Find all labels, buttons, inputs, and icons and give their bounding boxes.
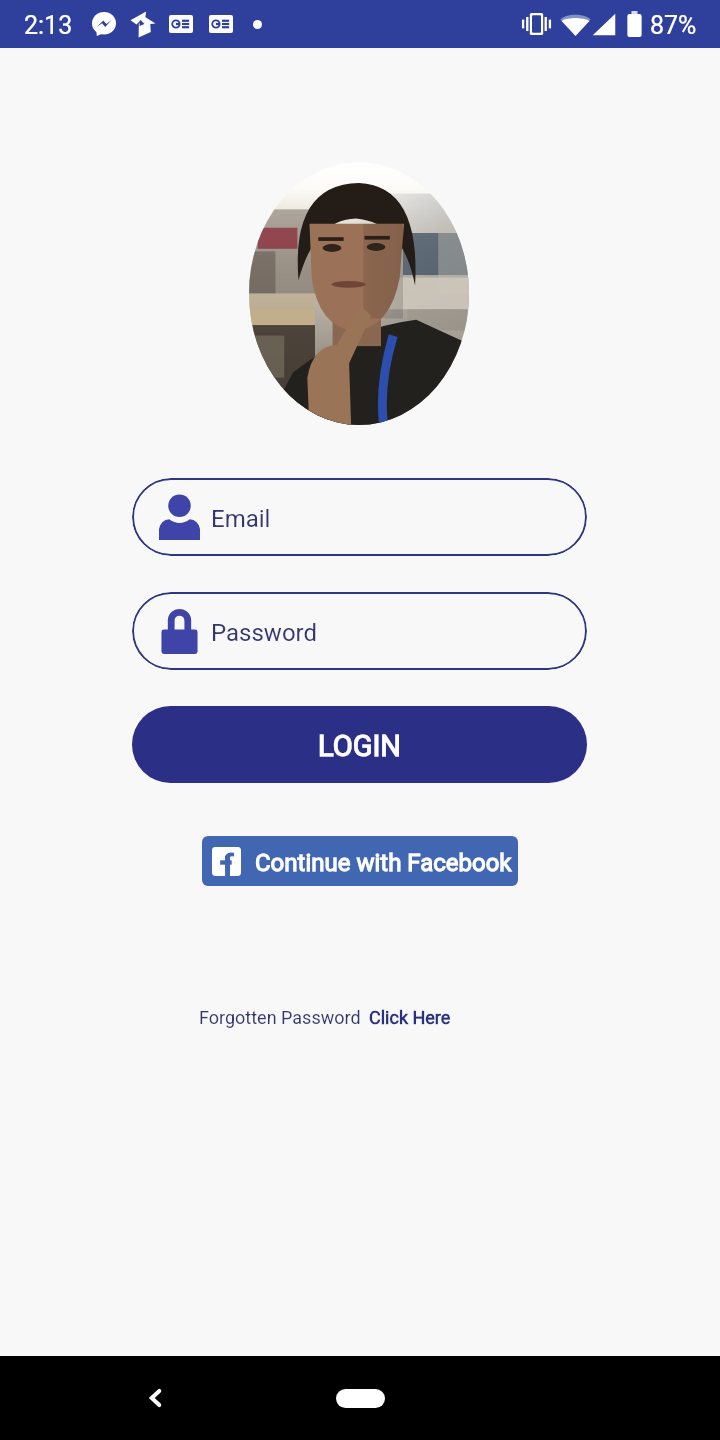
button[interactable]: Email: [132, 478, 587, 556]
button[interactable]: LOGIN: [132, 706, 587, 783]
button[interactable]: Password: [132, 592, 587, 670]
staticText: LOGIN: [318, 729, 401, 763]
staticText: 2:13: [24, 11, 73, 40]
button[interactable]: Back: [132, 1375, 178, 1421]
staticText: Email: [211, 505, 271, 533]
staticText: 87%: [650, 11, 697, 40]
staticText: Password: [211, 619, 318, 647]
staticText: Forgotten Password: [199, 1007, 361, 1028]
staticText: Click Here: [369, 1007, 451, 1028]
button[interactable]: Continue with Facebook: [202, 836, 518, 886]
staticText: Continue with Facebook: [255, 849, 512, 877]
button[interactable]: Click Here: [369, 1007, 451, 1028]
button[interactable]: Home: [336, 1389, 385, 1408]
